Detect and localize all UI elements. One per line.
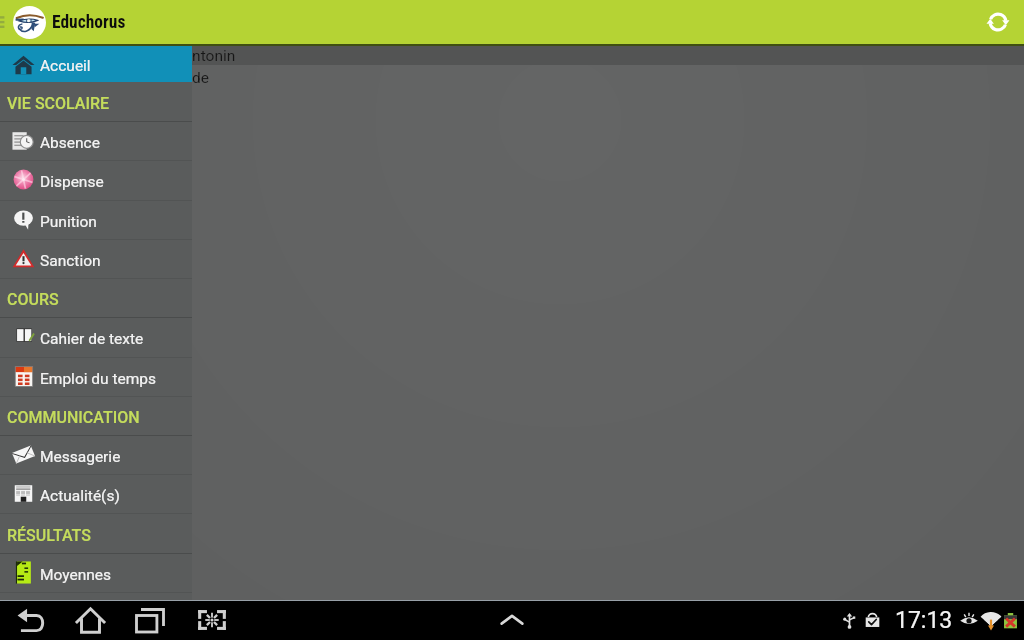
staticText: Punition xyxy=(40,213,97,231)
button[interactable]: Cahier de texte xyxy=(0,317,192,356)
button[interactable]: Home xyxy=(68,600,112,640)
button[interactable]: Dispense xyxy=(0,160,192,199)
button[interactable]: Back xyxy=(9,600,53,640)
button[interactable]: Punition xyxy=(0,200,192,239)
button[interactable]: Screenshot xyxy=(190,600,234,640)
staticText: Sanction xyxy=(40,252,101,270)
staticText: 17:13 xyxy=(895,607,953,634)
staticText: Absence xyxy=(40,134,100,152)
button[interactable]: Sanction xyxy=(0,239,192,278)
staticText: COMMUNICATION xyxy=(7,408,140,427)
staticText: RÉSULTATS xyxy=(7,526,91,545)
button[interactable]: Open navigation drawer xyxy=(0,0,13,44)
staticText: Actualité(s) xyxy=(40,487,120,505)
staticText: Emploi du temps xyxy=(40,370,157,388)
staticText: Antonin xyxy=(182,47,236,65)
staticText: VIE SCOLAIRE xyxy=(7,94,110,113)
staticText: Cahier de texte xyxy=(40,330,144,348)
button[interactable]: Accueil xyxy=(0,46,192,82)
staticText: Accueil xyxy=(40,57,91,75)
button[interactable]: Expand status bar xyxy=(490,600,534,640)
button[interactable]: Moyennes xyxy=(0,553,192,592)
staticText: de xyxy=(192,69,209,87)
button[interactable]: Messagerie xyxy=(0,435,192,474)
button[interactable]: Refresh xyxy=(976,0,1020,44)
staticText: Moyennes xyxy=(40,566,112,584)
staticText: Messagerie xyxy=(40,448,121,466)
button[interactable]: Emploi du temps xyxy=(0,357,192,396)
staticText: COURS xyxy=(7,290,59,309)
staticText: Dispense xyxy=(40,173,104,191)
button[interactable]: Absence xyxy=(0,121,192,160)
button[interactable]: Recent apps xyxy=(128,600,172,640)
button[interactable]: Actualité(s) xyxy=(0,474,192,513)
staticText: Educhorus xyxy=(52,12,126,33)
